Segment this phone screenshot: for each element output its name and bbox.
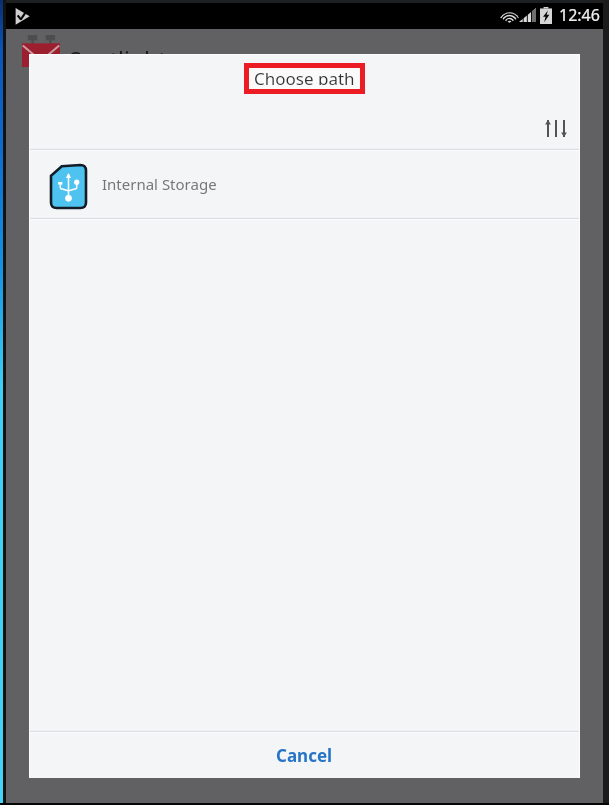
button[interactable]: Cancel [30, 732, 579, 778]
staticText: Cancel [276, 744, 333, 767]
staticText: Internal Storage [102, 174, 217, 194]
button[interactable]: Sort order [541, 114, 570, 143]
staticText: 12:46 [559, 4, 600, 26]
staticText: Choose path [254, 67, 355, 85]
other: Notification [15, 7, 30, 25]
button[interactable]: Internal Storage [30, 150, 579, 218]
staticText: Spotlight [69, 44, 167, 75]
